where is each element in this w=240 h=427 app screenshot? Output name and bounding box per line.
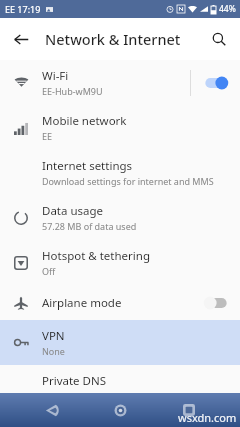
- staticText: Off: [42, 390, 56, 402]
- staticText: Mobile network: [42, 113, 127, 129]
- button[interactable]: Wi-Fi: [0, 60, 240, 105]
- button[interactable]: Back: [6, 24, 36, 54]
- staticText: VPN: [42, 328, 65, 344]
- staticText: Hotspot & tethering: [42, 248, 150, 264]
- button[interactable]: Back: [35, 393, 69, 427]
- staticText: None: [42, 345, 65, 357]
- button[interactable]: Internet settings: [0, 150, 240, 195]
- staticText: EE 17:19: [5, 3, 41, 15]
- button[interactable]: Home: [103, 393, 137, 427]
- staticText: wsxdn.com: [178, 410, 237, 425]
- staticText: Download settings for internet and MMS: [42, 175, 214, 187]
- button[interactable]: Hotspot & tethering: [0, 240, 240, 285]
- staticText: Network & Internet: [45, 29, 181, 49]
- staticText: Private DNS: [42, 373, 107, 389]
- button[interactable]: Mobile network: [0, 105, 240, 150]
- button[interactable]: Airplane mode: [0, 285, 240, 320]
- staticText: Internet settings: [42, 158, 133, 174]
- staticText: Data usage: [42, 203, 104, 219]
- staticText: Airplane mode: [42, 295, 122, 311]
- staticText: 57.28 MB of data used: [42, 220, 137, 232]
- button[interactable]: VPN: [0, 320, 240, 365]
- staticText: Off: [42, 265, 56, 277]
- staticText: 44%: [219, 3, 236, 15]
- button[interactable]: Private DNS: [0, 365, 240, 410]
- button[interactable]: Wi-Fi toggle: [191, 60, 240, 105]
- staticText: EE: [42, 130, 53, 142]
- button[interactable]: Recent apps: [172, 393, 206, 427]
- button[interactable]: Airplane mode toggle: [191, 285, 240, 320]
- button[interactable]: Search: [205, 25, 233, 53]
- button[interactable]: Data usage: [0, 195, 240, 240]
- staticText: Wi-Fi: [42, 68, 69, 84]
- staticText: EE-Hub-wM9U: [42, 85, 103, 97]
